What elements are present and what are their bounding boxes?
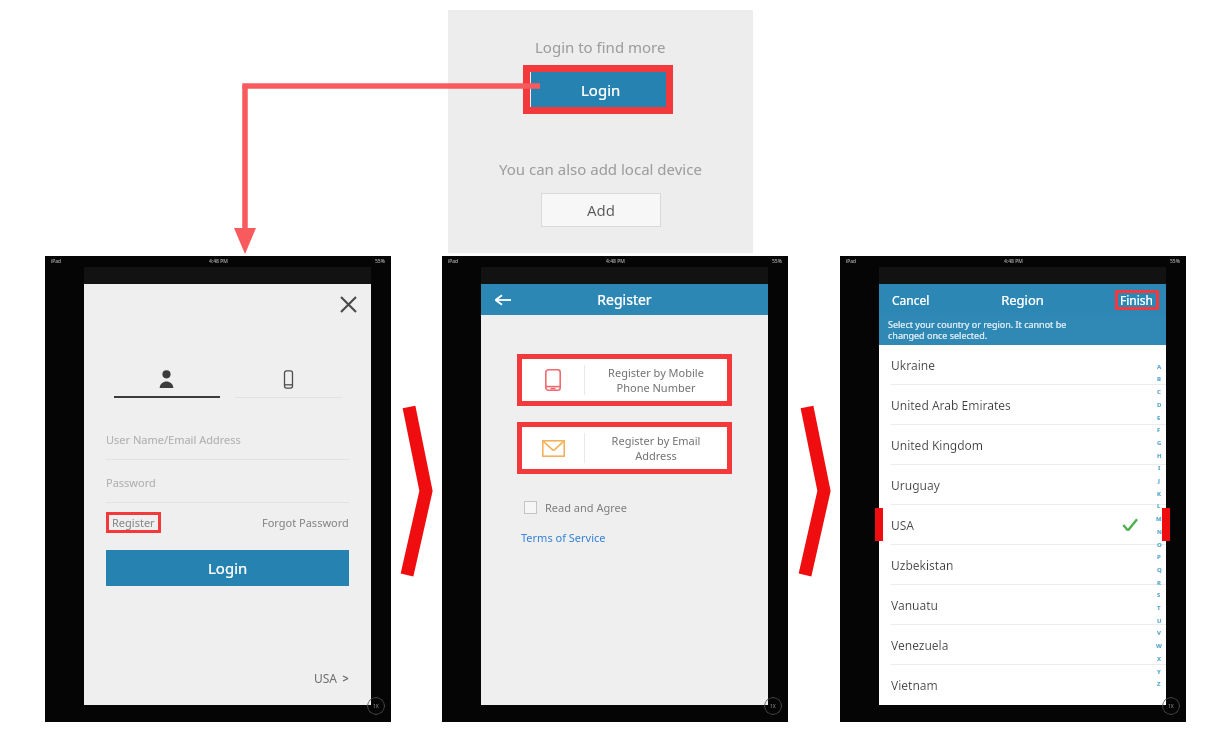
staticText: Terms of Service (521, 530, 606, 545)
staticText: USA (314, 670, 338, 686)
staticText: Venezuela (891, 637, 949, 653)
staticText: Register by Email Address (585, 433, 727, 463)
button[interactable]: Read and Agree (522, 498, 629, 517)
staticText: Login (581, 80, 621, 100)
button[interactable]: Register (112, 515, 155, 530)
staticText: 4:48 PM (1004, 258, 1023, 265)
staticText: U (1157, 617, 1162, 625)
staticText: Uruguay (891, 477, 940, 493)
staticText: Ukraine (891, 357, 935, 373)
staticText: E (1157, 414, 1161, 422)
staticText: Vanuatu (891, 597, 939, 613)
button[interactable]: Cancel (889, 289, 933, 311)
staticText: iPad (448, 258, 459, 265)
staticText: B (1157, 375, 1161, 383)
staticText: Password (106, 475, 156, 490)
button[interactable]: United Kingdom (879, 425, 1166, 464)
staticText: Read and Agree (545, 500, 627, 515)
staticText: P (1157, 553, 1161, 561)
staticText: Login (208, 558, 248, 578)
staticText: Uzbekistan (891, 557, 954, 573)
staticText: 1X (770, 703, 776, 710)
staticText: T (1157, 604, 1161, 612)
staticText: H (1157, 452, 1162, 460)
staticText: 1X (373, 703, 379, 710)
staticText: J (1158, 477, 1160, 485)
button[interactable]: Ukraine (879, 345, 1166, 384)
button[interactable]: Account login tab (106, 369, 227, 398)
staticText: X (1157, 655, 1162, 663)
button[interactable]: Forgot Password (262, 515, 349, 530)
staticText: User Name/Email Address (106, 432, 241, 447)
staticText: Forgot Password (262, 515, 349, 530)
staticText: L (1157, 502, 1161, 510)
staticText: You can also add local device (499, 159, 702, 179)
staticText: United Kingdom (891, 437, 984, 453)
staticText: R (1157, 579, 1161, 587)
staticText: M (1156, 515, 1162, 523)
staticText: Register (481, 290, 768, 309)
staticText: O (1157, 541, 1162, 549)
staticText: Register (112, 515, 155, 530)
staticText: A (1157, 363, 1162, 371)
button[interactable]: Vanuatu (879, 585, 1166, 624)
staticText: Y (1157, 668, 1161, 676)
staticText: I (1158, 464, 1161, 472)
staticText: S (1157, 591, 1161, 599)
button[interactable]: Add (541, 193, 661, 227)
staticText: United Arab Emirates (891, 397, 1011, 413)
button[interactable]: Vietnam (879, 665, 1166, 704)
staticText: 55% (772, 258, 782, 265)
staticText: USA (891, 517, 915, 533)
button[interactable]: Close (335, 291, 361, 317)
staticText: Finish (1120, 292, 1154, 308)
staticText: 4:48 PM (209, 258, 228, 265)
staticText: Select your country or region. It cannot… (888, 318, 1067, 342)
button[interactable]: USA (879, 505, 1166, 544)
staticText: 55% (1170, 258, 1180, 265)
button[interactable]: Register by Mobile Phone Number (522, 359, 727, 401)
button[interactable]: Finish (1120, 292, 1154, 308)
staticText: iPad (51, 258, 62, 265)
button[interactable]: United Arab Emirates (879, 385, 1166, 424)
staticText: W (1156, 642, 1162, 650)
button[interactable]: Phone login tab (227, 370, 349, 398)
button[interactable]: Login (531, 72, 671, 108)
staticText: Register by Mobile Phone Number (585, 365, 727, 395)
staticText: iPad (846, 258, 857, 265)
staticText: Q (1157, 566, 1162, 574)
button[interactable]: Back (491, 288, 515, 312)
staticText: F (1157, 426, 1161, 434)
staticText: Add (587, 200, 616, 220)
button[interactable]: Register by Email Address (522, 427, 727, 469)
staticText: 1X (1168, 703, 1174, 710)
staticText: G (1157, 439, 1162, 447)
staticText: Vietnam (891, 677, 938, 693)
button[interactable]: Login (106, 550, 349, 586)
button[interactable]: Venezuela (879, 625, 1166, 664)
staticText: K (1157, 490, 1161, 498)
button[interactable]: Uzbekistan (879, 545, 1166, 584)
staticText: Cancel (892, 292, 930, 308)
staticText: N (1157, 528, 1162, 536)
button[interactable]: USA (310, 666, 353, 690)
staticText: D (1157, 401, 1162, 409)
staticText: 4:48 PM (606, 258, 625, 265)
staticText: Login to find more (535, 37, 666, 57)
button[interactable]: Terms of Service (519, 528, 608, 547)
staticText: V (1157, 629, 1161, 637)
staticText: Region (879, 291, 1166, 309)
staticText: C (1157, 388, 1161, 396)
staticText: 55% (375, 258, 385, 265)
button[interactable]: Uruguay (879, 465, 1166, 504)
staticText: Z (1157, 680, 1161, 688)
